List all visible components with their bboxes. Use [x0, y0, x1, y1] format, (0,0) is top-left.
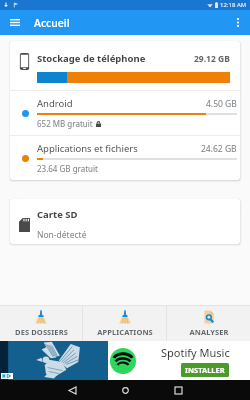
button[interactable]: Accueil	[30, 10, 70, 35]
staticText: Carte SD	[37, 208, 78, 221]
button[interactable]: More options	[226, 10, 250, 35]
staticText: DES DOSSIERS	[15, 327, 68, 337]
staticText: 24.62 GB	[201, 143, 237, 155]
button[interactable]: DES DOSSIERS	[0, 306, 82, 341]
staticText: APPLICATIONS	[97, 327, 153, 337]
staticText: Non-détecté	[37, 229, 87, 241]
staticText: Spotify Music	[161, 345, 230, 360]
button[interactable]: ANALYSER	[167, 306, 250, 341]
staticText: Android	[37, 97, 73, 110]
staticText: ANALYSER	[189, 327, 229, 337]
staticText: Stockage de téléphone	[37, 52, 146, 65]
staticText: Applications et fichiers	[37, 142, 138, 155]
staticText: 12:18 AM	[220, 1, 247, 9]
button[interactable]: Navigation menu	[0, 10, 30, 35]
staticText: Accueil	[34, 16, 70, 30]
staticText: 652 MB gratuit	[37, 118, 93, 129]
button[interactable]: Back	[46, 380, 99, 400]
staticText: 4.50 GB	[206, 98, 237, 110]
button[interactable]: Stockage de téléphone	[10, 41, 240, 90]
staticText: INSTALLER	[185, 365, 225, 375]
button[interactable]: Android	[10, 91, 240, 135]
button[interactable]: APPLICATIONS	[83, 306, 166, 341]
button[interactable]: Carte SD	[10, 199, 240, 244]
staticText: 29.12 GB	[194, 53, 230, 65]
button[interactable]: Recent apps	[152, 380, 205, 400]
button[interactable]: Applications et fichiers	[10, 136, 240, 180]
button[interactable]: Spotify Music	[0, 341, 250, 380]
staticText: 23.64 GB gratuit	[37, 163, 98, 174]
button[interactable]: Home	[99, 380, 152, 400]
